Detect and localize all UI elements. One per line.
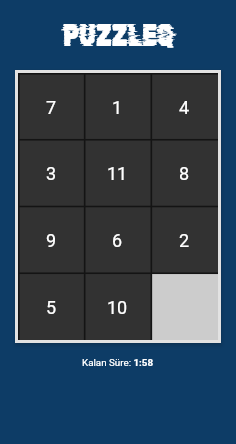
button[interactable]	[151, 273, 218, 340]
button[interactable]: 8	[151, 139, 218, 206]
button[interactable]: 5	[18, 273, 84, 340]
staticText: Kalan Süre: 1:58	[82, 357, 154, 368]
button[interactable]: 1	[84, 73, 151, 139]
button[interactable]: 6	[84, 206, 151, 273]
staticText: 5	[46, 297, 57, 318]
staticText: PUZZLEQ	[63, 17, 174, 54]
button[interactable]: 11	[84, 139, 151, 206]
button[interactable]: 9	[18, 206, 84, 273]
button[interactable]: 7	[18, 73, 84, 139]
staticText: 8	[179, 163, 190, 184]
staticText: 1	[112, 97, 123, 118]
button[interactable]: 3	[18, 139, 84, 206]
button[interactable]: 4	[151, 73, 218, 139]
staticText: 10	[107, 297, 128, 318]
staticText: 3	[46, 163, 57, 184]
staticText: 7	[46, 97, 57, 118]
staticText: 11	[107, 163, 128, 184]
button[interactable]: 2	[151, 206, 218, 273]
staticText: 2	[179, 230, 190, 251]
staticText: 6	[112, 230, 123, 251]
staticText: 4	[179, 97, 190, 118]
button[interactable]: 10	[84, 273, 151, 340]
staticText: 9	[46, 230, 57, 251]
